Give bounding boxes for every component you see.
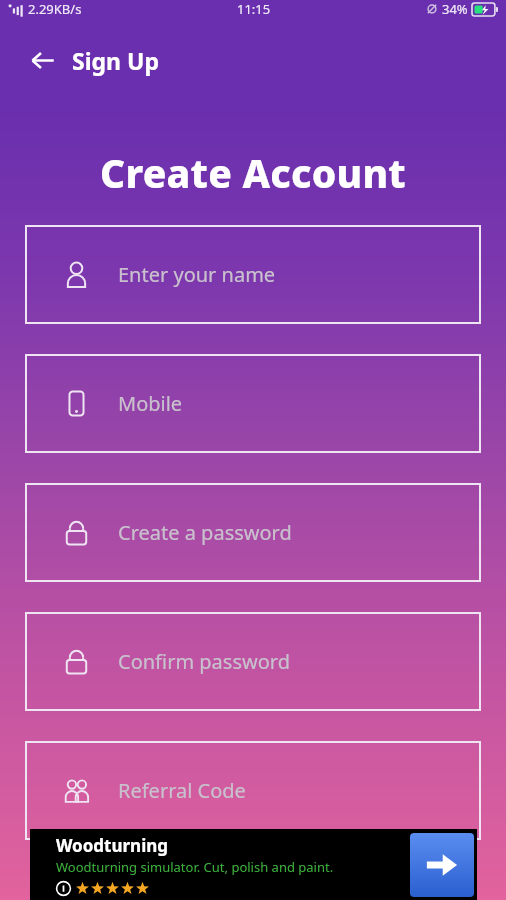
staticText: Woodturning simulator. Cut, polish and p… [56, 858, 334, 876]
staticText: Create a password [118, 519, 292, 546]
staticText: Enter your name [118, 261, 276, 288]
button[interactable]: Enter your name [25, 225, 481, 324]
staticText: Create Account [0, 146, 506, 199]
button[interactable]: Referral Code [25, 741, 481, 840]
staticText: Mobile [118, 390, 183, 417]
staticText: Confirm password [118, 648, 290, 675]
staticText: 34% [442, 0, 468, 18]
staticText: Woodturning [56, 834, 169, 857]
button[interactable]: Woodturning [30, 829, 477, 900]
button[interactable]: Back [18, 36, 66, 84]
button[interactable]: Open ad [410, 833, 474, 897]
staticText: Sign Up [72, 45, 159, 76]
staticText: 11:15 [237, 0, 271, 18]
staticText: Referral Code [118, 777, 246, 804]
button[interactable]: Confirm password [25, 612, 481, 711]
button[interactable]: Create a password [25, 483, 481, 582]
button[interactable]: Mobile [25, 354, 481, 453]
staticText: 2.29KB/s [28, 0, 82, 18]
